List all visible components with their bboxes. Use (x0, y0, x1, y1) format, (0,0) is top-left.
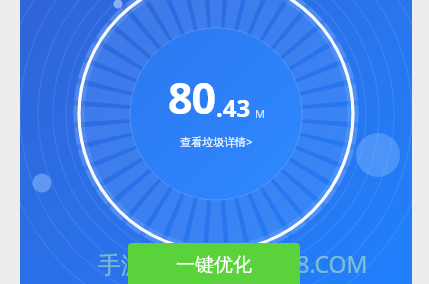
staticText: 查看垃圾详情> (180, 134, 253, 149)
button[interactable]: 80 (126, 68, 306, 149)
staticText: 手游5588 (98, 248, 197, 279)
staticText: 一键优化 (176, 253, 252, 277)
button[interactable]: 一键优化 (128, 243, 300, 284)
staticText: .43 (216, 91, 251, 124)
staticText: 80 (168, 68, 216, 127)
staticText: 688.COM (270, 248, 368, 279)
staticText: M (255, 106, 265, 121)
